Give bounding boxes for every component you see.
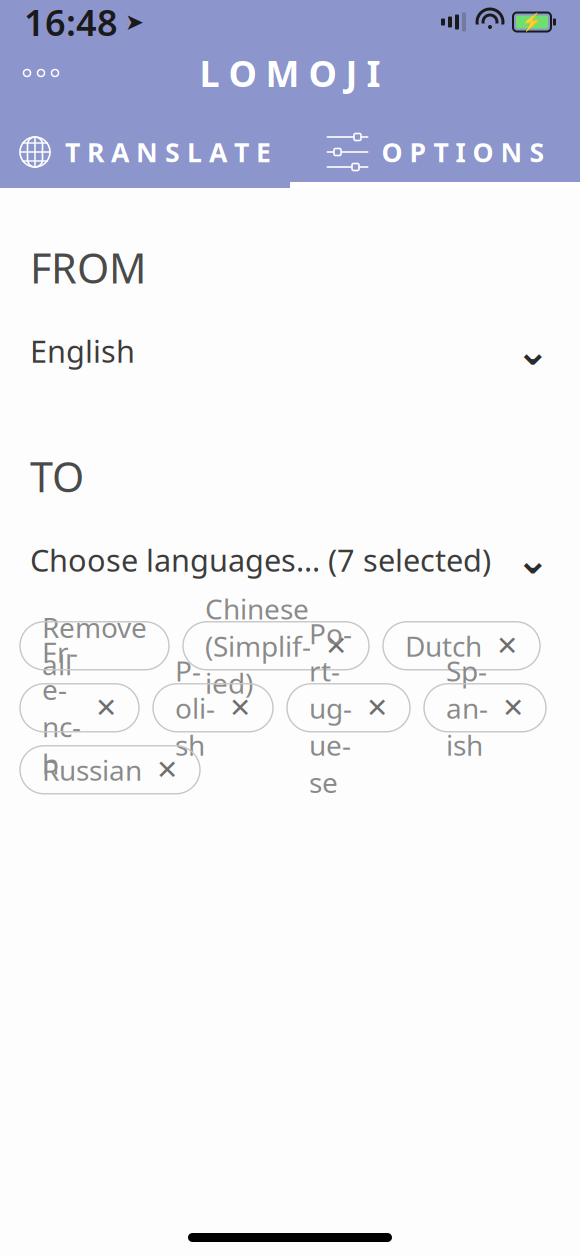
button[interactable]: English (30, 331, 550, 371)
staticText: ✕ (502, 693, 524, 723)
staticText: ✕ (496, 631, 518, 661)
button[interactable]: Polish (153, 684, 273, 732)
staticText: ✕ (156, 755, 178, 785)
staticText: Polish (175, 652, 215, 763)
button[interactable]: T R A N S L A T E (0, 116, 290, 188)
staticText: Portuguese (309, 615, 352, 801)
button[interactable]: O P T I O N S (290, 116, 580, 188)
staticText: Remove all (42, 609, 147, 683)
button[interactable]: Choose languages... (7 selected) (30, 540, 550, 580)
staticText: TO (30, 449, 84, 504)
staticText: English (30, 330, 135, 371)
staticText: Dutch (405, 627, 482, 664)
staticText: T R A N S L A T E (65, 134, 271, 170)
staticText: Chinese (Simplified) (205, 590, 311, 701)
button[interactable]: Portuguese (287, 684, 410, 732)
button[interactable]: Remove all (20, 622, 169, 670)
button[interactable]: Chinese (Simplified) (183, 622, 369, 670)
button[interactable]: Dutch (383, 622, 540, 670)
button[interactable]: More options (6, 51, 76, 95)
staticText: ➤ (125, 9, 144, 35)
staticText: Spanish (446, 652, 488, 763)
staticText: ✕ (366, 693, 388, 723)
staticText: FROM (30, 240, 146, 295)
staticText: 16:48 (24, 0, 118, 46)
staticText: ⚡ (521, 12, 543, 32)
staticText: Russian (42, 751, 142, 788)
button[interactable]: Spanish (424, 684, 546, 732)
staticText: French (42, 633, 81, 782)
staticText: ⌄ (516, 328, 550, 374)
staticText: O P T I O N S (381, 134, 544, 170)
button[interactable]: Russian (20, 746, 200, 794)
staticText: ✕ (229, 693, 251, 723)
staticText: ✕ (325, 631, 347, 661)
staticText: Choose languages... (7 selected) (30, 539, 491, 580)
staticText: ✕ (95, 693, 117, 723)
staticText: ⌄ (516, 537, 550, 582)
staticText: L O M O J I (199, 49, 380, 97)
button[interactable]: French (20, 684, 139, 732)
